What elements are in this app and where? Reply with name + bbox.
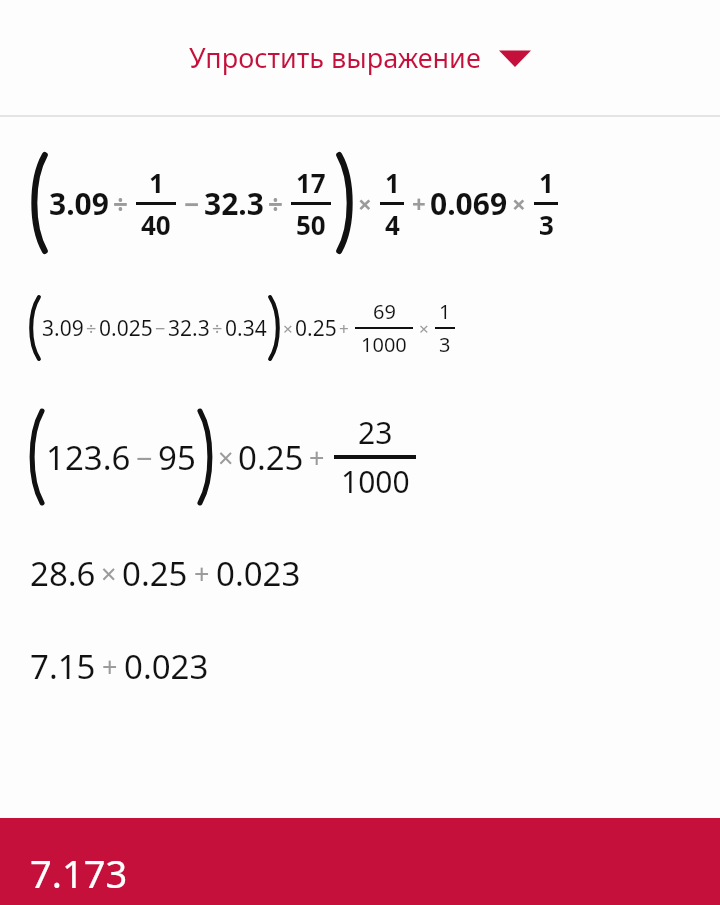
staticText: 1 xyxy=(439,298,451,325)
staticText: + xyxy=(102,648,118,685)
staticText: ÷ xyxy=(113,186,128,221)
staticText: 3 xyxy=(539,207,554,242)
staticText: − xyxy=(136,438,153,477)
staticText: × xyxy=(101,555,117,592)
staticText: 0.025 xyxy=(99,314,153,343)
staticText: 3.09 xyxy=(49,183,109,224)
staticText: × xyxy=(512,187,526,220)
staticText: 0.25 xyxy=(122,551,188,596)
staticText: + xyxy=(412,187,426,220)
staticText: Упростить выражение xyxy=(189,39,481,76)
staticText: 0.34 xyxy=(225,314,267,343)
staticText: 7.173 xyxy=(30,847,128,899)
staticText: × xyxy=(419,317,429,340)
staticText: 3 xyxy=(439,331,451,358)
staticText: 1 xyxy=(385,165,400,200)
staticText: 123.6 xyxy=(46,435,131,480)
staticText: 32.3 xyxy=(204,183,264,224)
staticText: 0.023 xyxy=(216,551,301,596)
staticText: 23 xyxy=(358,412,393,453)
staticText: 7.15 xyxy=(30,644,96,689)
button[interactable]: 7.173 xyxy=(0,818,720,905)
staticText: ÷ xyxy=(212,316,223,341)
staticText: + xyxy=(194,555,210,592)
button[interactable]: Упростить выражение xyxy=(0,0,720,115)
button[interactable]: 28.6 xyxy=(30,551,301,596)
button[interactable]: 7.15 xyxy=(30,644,209,689)
staticText: 1000 xyxy=(361,331,407,358)
staticText: 0.023 xyxy=(124,644,209,689)
staticText: ÷ xyxy=(86,316,97,341)
staticText: 4 xyxy=(385,207,400,242)
staticText: × xyxy=(218,439,234,476)
staticText: + xyxy=(309,439,325,476)
staticText: 1000 xyxy=(341,461,410,502)
staticText: 28.6 xyxy=(30,551,96,596)
button[interactable]: 3.09 xyxy=(30,155,562,251)
staticText: 95 xyxy=(158,435,196,480)
staticText: 17 xyxy=(296,165,326,200)
staticText: 0.069 xyxy=(430,183,508,224)
staticText: 0.25 xyxy=(238,435,304,480)
staticText: 32.3 xyxy=(168,314,210,343)
staticText: + xyxy=(339,317,349,340)
staticText: 3.09 xyxy=(42,314,84,343)
staticText: 40 xyxy=(141,207,171,242)
staticText: 0.25 xyxy=(295,314,337,343)
staticText: × xyxy=(283,317,293,340)
staticText: 1 xyxy=(539,165,554,200)
staticText: 1 xyxy=(149,165,164,200)
staticText: − xyxy=(184,186,200,221)
staticText: 69 xyxy=(373,298,396,325)
staticText: − xyxy=(155,316,166,341)
staticText: ÷ xyxy=(268,186,283,221)
button[interactable]: 3.09 xyxy=(28,297,459,359)
staticText: 50 xyxy=(296,207,326,242)
staticText: × xyxy=(358,187,372,220)
button[interactable]: 123.6 xyxy=(28,411,420,503)
